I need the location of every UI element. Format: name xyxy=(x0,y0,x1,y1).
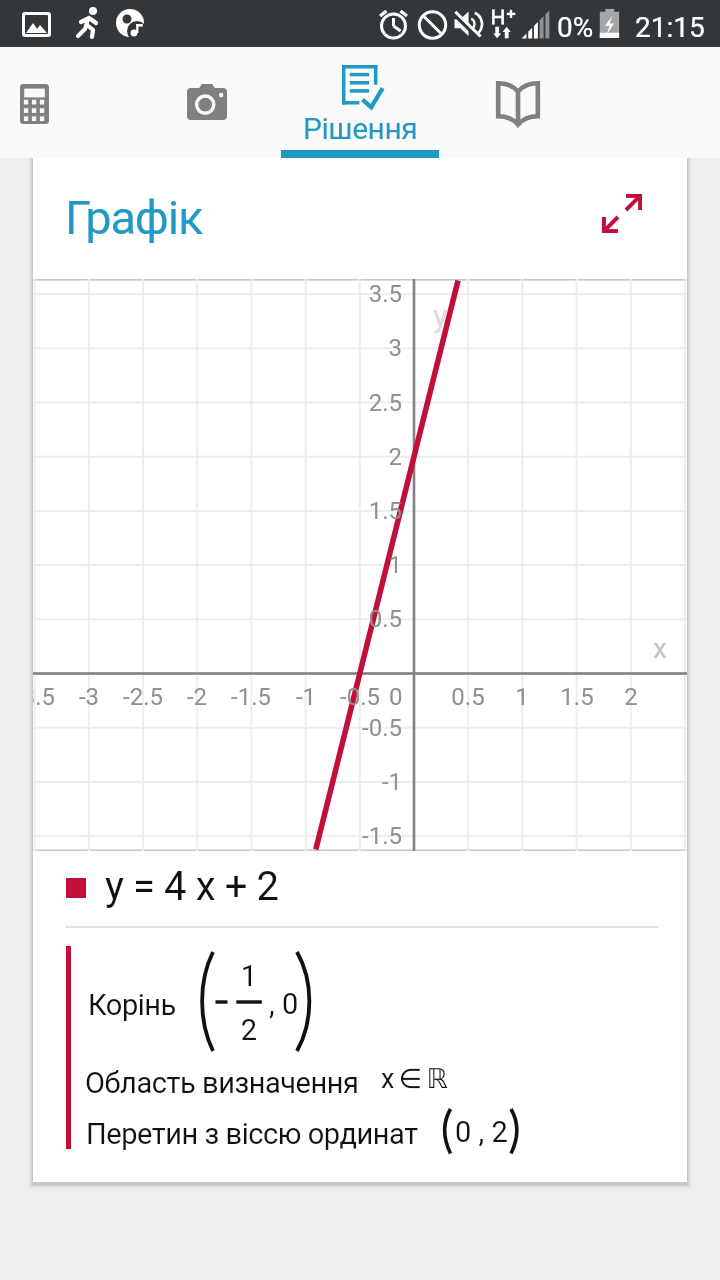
staticText: 0 xyxy=(282,987,299,1021)
staticText: 0 , 2 xyxy=(455,1115,508,1149)
staticText: -1 xyxy=(322,768,402,796)
staticText: Перетин з віссю ординат xyxy=(86,1117,418,1151)
staticText: -2.5 xyxy=(103,683,183,711)
staticText: Графік xyxy=(65,190,203,245)
staticText: Корінь xyxy=(88,988,176,1022)
staticText: 1 xyxy=(236,959,262,993)
staticText: 2 xyxy=(322,443,402,471)
staticText: x xyxy=(653,632,667,665)
staticText: 2 xyxy=(591,683,671,711)
staticText: 0.5 xyxy=(322,605,402,633)
staticText: Рішення xyxy=(303,111,418,146)
staticText: 21:15 xyxy=(635,11,705,44)
staticText: 0.5 xyxy=(428,683,508,711)
staticText: , xyxy=(269,987,275,1021)
staticText: 0 xyxy=(389,683,403,711)
staticText: 1 xyxy=(322,551,402,579)
staticText: 1.5 xyxy=(322,497,402,525)
staticText: -2 xyxy=(157,683,237,711)
staticText: -0.5 xyxy=(322,714,402,742)
staticText: -3.5 xyxy=(33,683,75,711)
staticText: 2.5 xyxy=(322,389,402,417)
staticText: x ∈ ℝ xyxy=(381,1063,447,1095)
staticText: 3.5 xyxy=(322,280,402,308)
staticText: 1.5 xyxy=(537,683,617,711)
button[interactable]: Camera xyxy=(147,47,267,158)
staticText: -1.5 xyxy=(322,822,402,850)
staticText: -0.5 xyxy=(320,683,400,711)
staticText: -3 xyxy=(49,683,129,711)
button[interactable]: Glossary xyxy=(460,47,580,158)
button[interactable]: Calculator xyxy=(0,47,120,158)
staticText: 2 xyxy=(236,1013,262,1047)
staticText: 1 xyxy=(482,683,562,711)
button[interactable]: Рішення xyxy=(281,47,439,158)
staticText: y xyxy=(433,298,448,334)
staticText: y = 4 x + 2 xyxy=(105,863,279,910)
button[interactable]: Expand graph xyxy=(588,180,656,244)
staticText: Область визначення xyxy=(85,1066,359,1100)
staticText: 0% xyxy=(557,11,594,44)
staticText: -1 xyxy=(266,683,346,711)
staticText: 3 xyxy=(322,334,402,362)
staticText: -1.5 xyxy=(211,683,291,711)
